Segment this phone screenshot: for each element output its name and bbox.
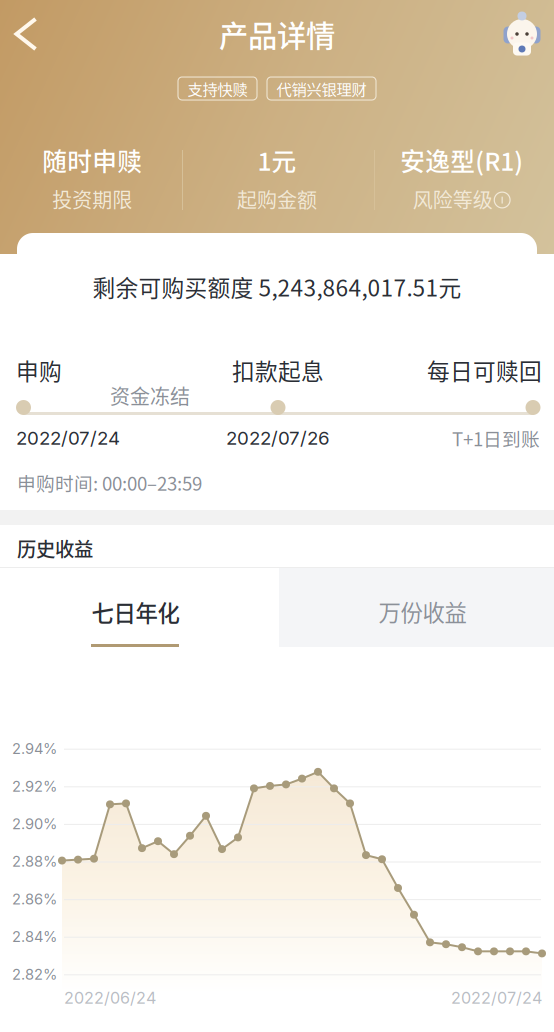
button[interactable]: 返回: [0, 8, 52, 60]
staticText: 七日年化: [91, 596, 179, 628]
staticText: 万份收益: [378, 595, 466, 628]
button[interactable]: 万份收益: [279, 568, 554, 647]
staticText: 起购金额: [237, 184, 317, 213]
staticText: 2.94%: [12, 740, 57, 757]
staticText: 支持快赎: [187, 77, 247, 100]
staticText: T+1日到账: [452, 424, 540, 451]
staticText: 代销兴银理财: [276, 77, 366, 100]
staticText: 2.86%: [12, 890, 57, 908]
staticText: 2.82%: [12, 965, 57, 983]
staticText: 申购: [16, 354, 62, 386]
staticText: 剩余可购买额度 5,243,864,017.51元: [92, 270, 461, 303]
staticText: 每日可赎回: [427, 354, 542, 386]
staticText: 2.84%: [12, 928, 57, 945]
staticText: 资金冻结: [110, 381, 190, 410]
staticText: 安逸型(R1): [400, 142, 523, 178]
staticText: 产品详情: [219, 13, 335, 55]
staticText: 扣款起息: [232, 354, 324, 386]
staticText: 2.92%: [12, 777, 57, 795]
staticText: 申购时间: 00:00–23:59: [17, 469, 202, 496]
staticText: 历史收益: [17, 534, 93, 562]
staticText: 随时申赎: [42, 142, 142, 178]
staticText: 投资期限: [52, 184, 132, 213]
staticText: 风险等级: [413, 184, 493, 213]
staticText: 2022/07/24: [451, 988, 542, 1007]
button[interactable]: 在线客服: [498, 8, 546, 58]
staticText: 2.88%: [12, 853, 57, 870]
button[interactable]: 七日年化: [0, 568, 279, 647]
staticText: 2022/07/26: [226, 427, 330, 449]
staticText: 2022/07/24: [16, 427, 120, 449]
staticText: 1元: [257, 142, 296, 178]
staticText: 2.90%: [12, 815, 57, 833]
staticText: 2022/06/24: [64, 988, 156, 1007]
